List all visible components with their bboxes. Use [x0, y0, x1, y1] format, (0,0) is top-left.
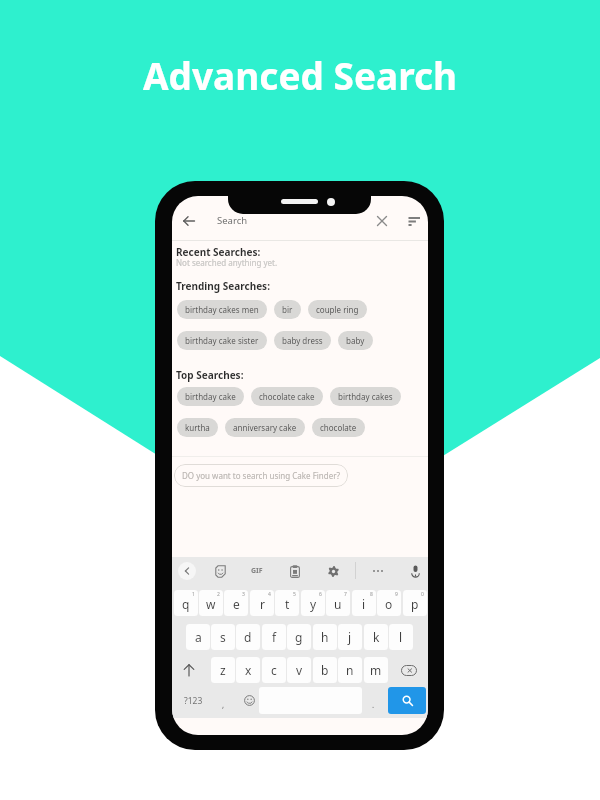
- button[interactable]: Voice input: [406, 562, 424, 580]
- staticText: d: [244, 629, 252, 645]
- button[interactable]: baby dress: [274, 331, 331, 350]
- button[interactable]: g: [287, 624, 311, 650]
- staticText: 0: [421, 591, 424, 598]
- staticText: 4: [268, 591, 271, 598]
- button[interactable]: u: [326, 590, 350, 616]
- button[interactable]: d: [236, 624, 260, 650]
- staticText: anniversary cake: [233, 422, 297, 433]
- staticText: baby dress: [282, 335, 323, 346]
- button[interactable]: m: [364, 657, 388, 683]
- staticText: f: [272, 629, 277, 645]
- button[interactable]: a: [186, 624, 210, 650]
- button[interactable]: b: [313, 657, 337, 683]
- staticText: q: [182, 596, 190, 612]
- staticText: chocolate: [320, 422, 357, 433]
- staticText: DO you want to search using Cake Finder?: [182, 470, 341, 481]
- button[interactable]: Stickers: [211, 562, 229, 580]
- button[interactable]: r: [250, 590, 274, 616]
- button[interactable]: baby: [338, 331, 373, 350]
- button[interactable]: e: [224, 590, 248, 616]
- button[interactable]: Clear: [371, 210, 393, 232]
- button[interactable]: x: [236, 657, 260, 683]
- button[interactable]: s: [211, 624, 235, 650]
- button[interactable]: v: [287, 657, 311, 683]
- button[interactable]: chocolate cake: [251, 387, 323, 406]
- button[interactable]: Filter: [403, 210, 425, 232]
- button[interactable]: birthday cake: [177, 387, 244, 406]
- button[interactable]: DO you want to search using Cake Finder?: [174, 464, 348, 487]
- button[interactable]: t: [275, 590, 299, 616]
- button[interactable]: Close panel: [178, 562, 196, 580]
- staticText: Not searched anything yet.: [176, 257, 278, 268]
- button[interactable]: i: [352, 590, 376, 616]
- staticText: j: [348, 629, 352, 645]
- button[interactable]: couple ring: [308, 300, 367, 319]
- button[interactable]: Clipboard: [286, 562, 304, 580]
- staticText: 5: [293, 591, 296, 598]
- button[interactable]: Shift: [173, 657, 205, 683]
- staticText: x: [245, 662, 252, 678]
- button[interactable]: Backspace: [392, 657, 426, 683]
- button[interactable]: n: [338, 657, 362, 683]
- staticText: birthday cakes men: [185, 304, 259, 315]
- button[interactable]: ?123: [173, 687, 213, 714]
- staticText: a: [195, 629, 202, 645]
- staticText: k: [373, 629, 380, 645]
- staticText: l: [399, 629, 403, 645]
- staticText: GIF: [251, 566, 263, 576]
- staticText: r: [260, 596, 265, 612]
- button[interactable]: y: [301, 590, 325, 616]
- staticText: i: [362, 596, 366, 612]
- button[interactable]: bir: [274, 300, 301, 319]
- staticText: o: [385, 596, 393, 612]
- button[interactable]: More options: [369, 562, 387, 580]
- staticText: g: [295, 629, 303, 645]
- button[interactable]: birthday cake sister: [177, 331, 267, 350]
- button[interactable]: Back: [178, 210, 200, 232]
- button[interactable]: Emoji: [240, 687, 258, 714]
- button[interactable]: chocolate: [312, 418, 365, 437]
- staticText: n: [346, 662, 354, 678]
- staticText: Recent Searches:: [176, 245, 261, 259]
- staticText: ,: [222, 699, 225, 710]
- button[interactable]: kurtha: [177, 418, 218, 437]
- staticText: e: [233, 596, 240, 612]
- button[interactable]: birthday cakes men: [177, 300, 267, 319]
- staticText: v: [296, 662, 303, 678]
- staticText: y: [310, 596, 317, 612]
- button[interactable]: anniversary cake: [225, 418, 305, 437]
- staticText: ?123: [184, 695, 203, 707]
- button[interactable]: p: [403, 590, 427, 616]
- button[interactable]: Comma: [214, 687, 233, 714]
- staticText: kurtha: [185, 422, 210, 433]
- button[interactable]: c: [262, 657, 286, 683]
- button[interactable]: z: [211, 657, 235, 683]
- staticText: w: [206, 596, 216, 612]
- staticText: c: [271, 662, 277, 678]
- button[interactable]: q: [174, 590, 198, 616]
- button[interactable]: l: [389, 624, 413, 650]
- button[interactable]: h: [313, 624, 337, 650]
- button[interactable]: w: [199, 590, 223, 616]
- staticText: .: [372, 699, 375, 710]
- staticText: b: [321, 662, 329, 678]
- button[interactable]: f: [262, 624, 286, 650]
- button[interactable]: j: [338, 624, 362, 650]
- button[interactable]: o: [377, 590, 401, 616]
- staticText: m: [370, 662, 382, 678]
- staticText: 2: [217, 591, 220, 598]
- staticText: Trending Searches:: [176, 279, 270, 293]
- button[interactable]: GIF: [248, 562, 266, 580]
- button[interactable]: birthday cakes: [330, 387, 401, 406]
- staticText: Advanced Search: [143, 50, 458, 100]
- button[interactable]: Search: [388, 687, 426, 714]
- button[interactable]: Keyboard settings: [324, 562, 342, 580]
- staticText: birthday cakes: [338, 391, 393, 402]
- button[interactable]: k: [364, 624, 388, 650]
- button[interactable]: Period: [364, 687, 383, 714]
- staticText: 6: [319, 591, 322, 598]
- staticText: birthday cake sister: [185, 335, 259, 346]
- staticText: bir: [282, 304, 293, 315]
- staticText: 7: [344, 591, 347, 598]
